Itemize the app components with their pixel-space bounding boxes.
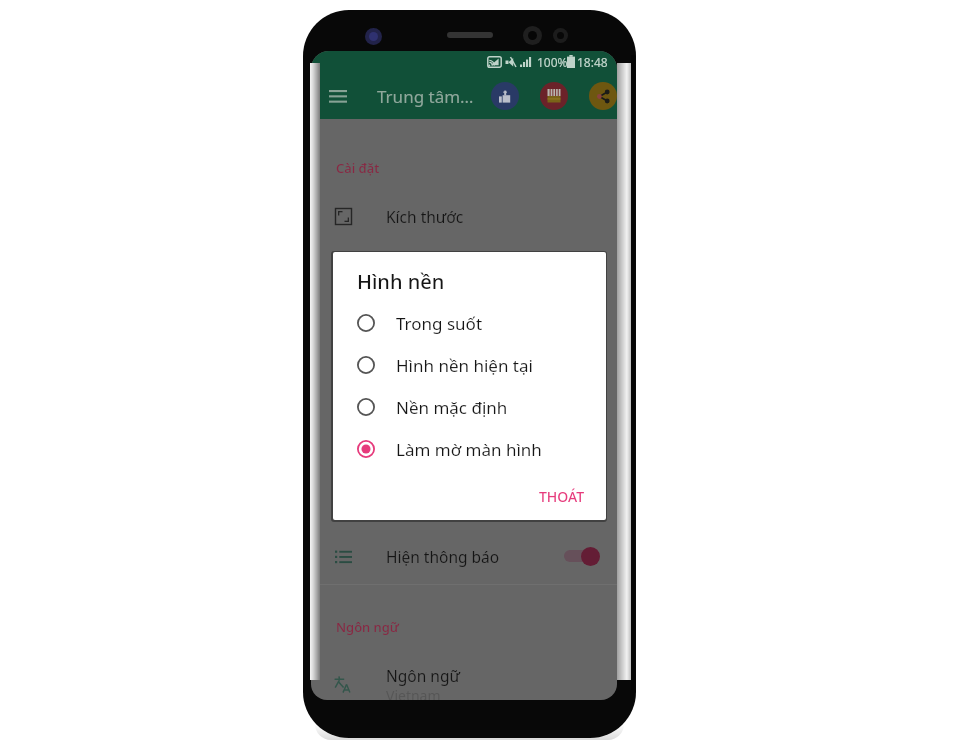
staticText: Hình nền — [357, 268, 445, 295]
button[interactable]: Hình nền — [311, 358, 617, 414]
button[interactable]: Kích thước — [311, 188, 617, 244]
button[interactable]: Toggle notifications — [562, 546, 600, 566]
button[interactable]: Nền mặc định — [333, 386, 606, 428]
button[interactable]: THOÁT — [533, 482, 591, 508]
button[interactable]: Store — [540, 82, 568, 110]
button[interactable]: Menu — [319, 77, 357, 115]
staticText: Cài đặt — [336, 159, 380, 177]
staticText: Trong suốt — [396, 312, 483, 335]
button[interactable]: Độ trong suốt — [311, 415, 617, 471]
staticText: 18:48 — [577, 54, 608, 70]
staticText: Vietnam — [386, 686, 441, 700]
staticText: Độ trong suốt — [386, 433, 487, 454]
staticText: Màu sắc — [386, 319, 446, 340]
button[interactable]: Trong suốt — [333, 302, 606, 344]
button[interactable]: Share — [589, 82, 617, 110]
button[interactable]: Cài đặt — [336, 157, 380, 179]
staticText: THOÁT — [539, 487, 585, 503]
staticText: Hình nền hiện tại — [396, 354, 533, 377]
button[interactable]: Ngôn ngữ — [336, 616, 399, 638]
button[interactable]: Hiệu ứng — [311, 472, 617, 528]
staticText: Kiểu hiển thị — [386, 262, 478, 283]
staticText: Ngôn ngữ — [336, 618, 399, 636]
staticText: Làm mờ màn hình — [396, 438, 542, 461]
staticText: Trung tâm… — [377, 85, 474, 108]
button[interactable]: Hiện thông báo — [311, 528, 617, 584]
button[interactable]: Like — [491, 82, 519, 110]
staticText: 100% — [537, 54, 568, 70]
staticText: Hiện thông báo — [386, 546, 500, 567]
button[interactable]: Kiểu hiển thị — [311, 244, 617, 300]
button[interactable]: Ngôn ngữ — [311, 657, 617, 700]
button[interactable]: Làm mờ màn hình — [333, 428, 606, 470]
button[interactable]: Màu sắc — [311, 301, 617, 357]
staticText: Kích thước — [386, 206, 464, 227]
staticText: Ngôn ngữ — [386, 665, 460, 686]
button[interactable]: Hình nền hiện tại — [333, 344, 606, 386]
staticText: Nền mặc định — [396, 396, 508, 419]
